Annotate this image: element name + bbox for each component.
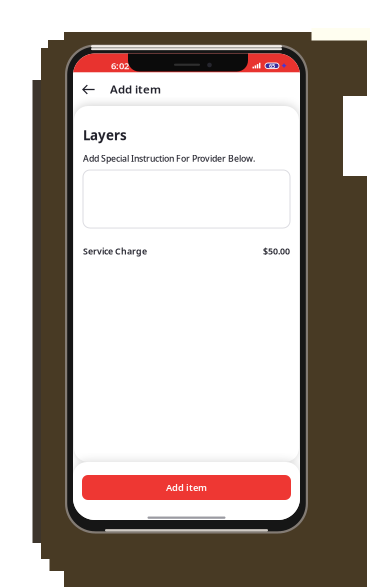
staticText: $50.00 xyxy=(263,245,290,257)
button[interactable]: Back xyxy=(73,72,103,106)
button[interactable]: Add item xyxy=(73,462,282,487)
staticText: Add item xyxy=(166,481,207,494)
staticText: Add item xyxy=(110,81,161,97)
staticText: 6:02 xyxy=(111,59,129,72)
staticText: 65 xyxy=(269,62,275,70)
staticText: Add Special Instruction For Provider Bel… xyxy=(83,153,255,164)
staticText: Service Charge xyxy=(83,245,147,257)
staticText: Layers xyxy=(83,126,127,144)
